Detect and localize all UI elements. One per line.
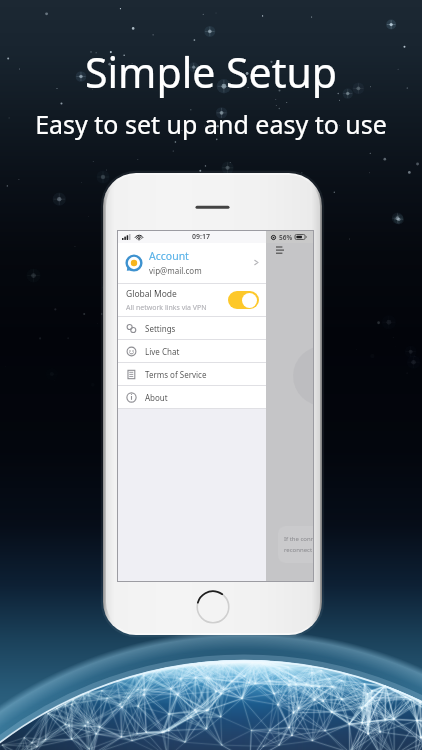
staticText: Terms of Service <box>145 369 207 380</box>
staticText: About <box>145 392 168 403</box>
staticText: Global Mode <box>126 288 177 300</box>
button[interactable]: Terms of Service <box>118 363 266 385</box>
staticText: Settings <box>145 323 176 334</box>
staticText: Account <box>149 249 189 263</box>
staticText: All network links via VPN <box>126 303 207 313</box>
button[interactable]: Live Chat <box>118 340 266 362</box>
button[interactable]: About <box>118 386 266 408</box>
staticText: Live Chat <box>145 346 180 357</box>
staticText: Simple Setup <box>85 44 337 100</box>
staticText: 09:17 <box>192 232 210 242</box>
button[interactable]: Menu <box>276 247 284 255</box>
staticText: Easy to set up and easy to use <box>35 107 387 141</box>
button[interactable]: Account <box>118 242 266 283</box>
staticText: vip@mail.com <box>149 265 202 276</box>
staticText: If the conn reconnect <box>284 535 313 554</box>
button[interactable]: Global Mode <box>118 284 266 316</box>
button[interactable]: Settings <box>118 317 266 339</box>
button[interactable] <box>228 291 259 309</box>
staticText: 56% <box>279 233 293 242</box>
